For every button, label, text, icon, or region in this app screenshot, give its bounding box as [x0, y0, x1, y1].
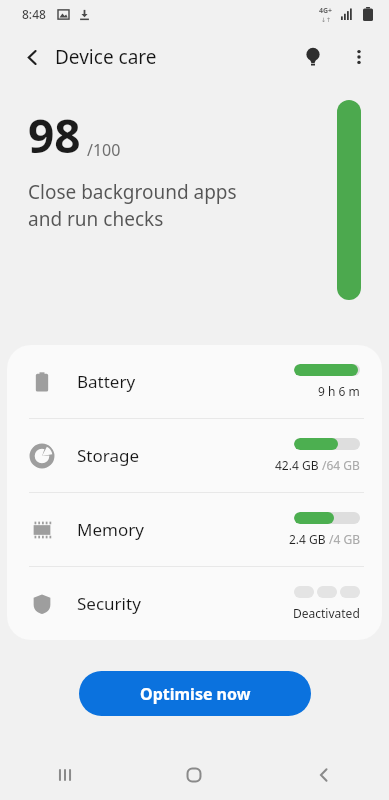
staticText: Memory	[77, 518, 144, 541]
button[interactable]: Security	[7, 567, 382, 640]
staticText: Device care	[55, 44, 157, 70]
staticText: 8:48	[22, 6, 46, 22]
staticText: 4G+	[319, 6, 333, 16]
staticText: 98	[28, 104, 81, 167]
staticText: Close background apps and run checks	[28, 179, 237, 232]
button[interactable]: Battery	[7, 345, 382, 418]
button[interactable]: Back	[259, 750, 389, 800]
button[interactable]: Memory	[7, 493, 382, 566]
button[interactable]: Back	[12, 37, 52, 77]
staticText: Optimise now	[140, 683, 251, 705]
staticText: /4 GB	[329, 531, 360, 547]
staticText: Deactivated	[293, 605, 360, 621]
staticText: ↓↑	[321, 16, 332, 23]
staticText: 2.4 GB	[289, 531, 329, 547]
button[interactable]: Storage	[7, 419, 382, 492]
staticText: 42.4 GB	[275, 457, 322, 473]
staticText: /64 GB	[322, 457, 360, 473]
button[interactable]: Optimise now	[79, 671, 311, 716]
staticText: Storage	[77, 444, 140, 467]
button[interactable]: More options	[339, 37, 379, 77]
staticText: /100	[87, 139, 121, 161]
staticText: 9 h 6 m	[318, 383, 360, 399]
button[interactable]: Recent apps	[0, 750, 129, 800]
button[interactable]: Tips	[293, 37, 333, 77]
staticText: Security	[77, 592, 141, 615]
button[interactable]: Home	[129, 750, 259, 800]
staticText: Battery	[77, 370, 136, 393]
